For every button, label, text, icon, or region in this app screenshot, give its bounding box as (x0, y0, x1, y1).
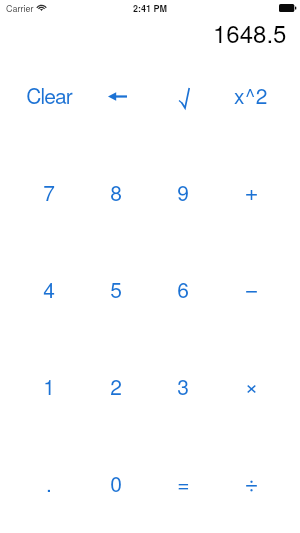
staticText: 0 (110, 468, 122, 498)
staticText: 1 (43, 371, 55, 401)
button[interactable]: 5 (82, 240, 149, 337)
button[interactable]: 9 (149, 143, 217, 240)
button[interactable]: Square root (149, 46, 217, 143)
staticText: x^2 (234, 80, 268, 110)
staticText: 6 (177, 274, 189, 304)
button[interactable]: 7 (15, 143, 82, 240)
button[interactable]: 1 (15, 337, 82, 434)
staticText: 9 (177, 177, 189, 207)
button[interactable]: x^2 (217, 46, 285, 143)
staticText: − (244, 270, 259, 304)
button[interactable]: . (15, 434, 82, 531)
button[interactable]: − (217, 240, 285, 337)
staticText: × (244, 367, 259, 401)
button[interactable]: × (217, 337, 285, 434)
staticText: 4 (43, 274, 55, 304)
button[interactable]: Backspace (82, 46, 149, 143)
button[interactable]: + (217, 143, 285, 240)
staticText: 2:41 PM (133, 2, 168, 15)
staticText: Clear (26, 80, 72, 110)
button[interactable]: ÷ (217, 434, 285, 531)
button[interactable]: 8 (82, 143, 149, 240)
staticText: . (46, 468, 52, 498)
button[interactable]: Clear (15, 46, 82, 143)
button[interactable]: = (149, 434, 217, 531)
staticText: 7 (43, 177, 55, 207)
staticText: 3 (177, 371, 189, 401)
staticText: ÷ (244, 464, 259, 498)
staticText: + (244, 173, 259, 207)
staticText: 5 (110, 274, 122, 304)
staticText: 8 (110, 177, 122, 207)
staticText: = (177, 468, 190, 498)
button[interactable]: 6 (149, 240, 217, 337)
staticText: Carrier (6, 2, 34, 15)
button[interactable]: 3 (149, 337, 217, 434)
button[interactable]: 0 (82, 434, 149, 531)
button[interactable]: 4 (15, 240, 82, 337)
button[interactable]: 2 (82, 337, 149, 434)
staticText: 2 (110, 371, 122, 401)
staticText: 1648.5 (213, 15, 287, 43)
